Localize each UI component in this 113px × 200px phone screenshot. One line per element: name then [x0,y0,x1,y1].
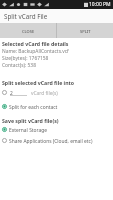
staticText: Name: BackupAllContacts.vcf [2,48,69,55]
staticText: Split for each contact [9,104,58,111]
button[interactable]: Selected option [0,101,113,112]
button[interactable]: Selected option [0,124,113,135]
staticText: External Storage [9,127,47,134]
staticText: Size(bytes): 1767158 [2,55,49,62]
staticText: Split vCard File [4,12,48,21]
staticText: 2 [10,90,13,97]
button[interactable]: Option [0,87,113,98]
button[interactable]: CLOSE [0,23,56,38]
staticText: CLOSE [22,29,35,34]
staticText: 10:00 PM [89,1,111,8]
button[interactable]: Option [0,135,113,146]
staticText: Selected vCard file details [2,40,69,47]
staticText: vCard file(s) [31,90,58,97]
other: Option [2,138,7,143]
other: Selected option [2,104,7,109]
staticText: Save split vCard file(s) [2,117,59,124]
other: Selected option [2,127,7,132]
staticText: Share Applications (Cloud, email etc) [9,138,93,145]
button[interactable]: SPLIT [57,23,113,38]
staticText: SPLIT [80,29,91,34]
staticText: Contact(s): 538 [2,62,36,69]
staticText: Split selected vCard file into [2,79,75,86]
other: Option [2,90,7,95]
